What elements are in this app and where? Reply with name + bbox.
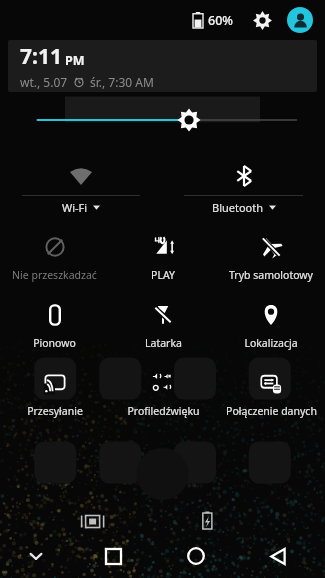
button[interactable]: Brightness [12,100,313,140]
staticText: Pionowo [33,336,76,350]
button[interactable]: PLAY [109,232,217,282]
button[interactable]: Back [237,534,319,578]
staticText: Wi-Fi [62,200,88,215]
staticText: Przesyłanie [27,404,83,418]
button[interactable]: Bluetooth [162,156,325,218]
button[interactable]: Settings [249,7,275,33]
button[interactable]: 7:11 [8,40,317,92]
button[interactable]: Połączenie danych [217,368,325,418]
button[interactable]: Collapse [0,534,72,578]
button[interactable]: Profiledźwięku [109,368,217,418]
staticText: Lokalizacja [244,336,298,350]
staticText: 60% [208,12,233,29]
staticText: wt., 5.07 [20,74,68,90]
staticText: Latarka [145,336,182,350]
button[interactable]: Przesyłanie [0,368,109,418]
staticText: śr., 7:30 AM [90,74,154,90]
staticText: Profiledźwięku [127,404,200,418]
button[interactable]: Lokalizacja [217,300,325,350]
button[interactable]: User [287,7,313,33]
staticText: Nie przeszkadzać [12,268,97,282]
button[interactable]: Nie przeszkadzać [0,232,109,282]
staticText: PM [65,52,85,69]
staticText: Bluetooth [212,200,264,215]
button[interactable]: Pionowo [0,300,109,350]
button[interactable]: Home [155,534,237,578]
button[interactable]: Recents [72,534,155,578]
staticText: 7:11 [20,42,62,71]
staticText: Tryb samolotowy [229,268,313,282]
button[interactable]: Wi-Fi [0,156,162,218]
staticText: Połączenie danych [226,404,317,418]
staticText: PLAY [151,268,175,282]
button[interactable]: Latarka [109,300,217,350]
button[interactable]: Tryb samolotowy [217,232,325,282]
